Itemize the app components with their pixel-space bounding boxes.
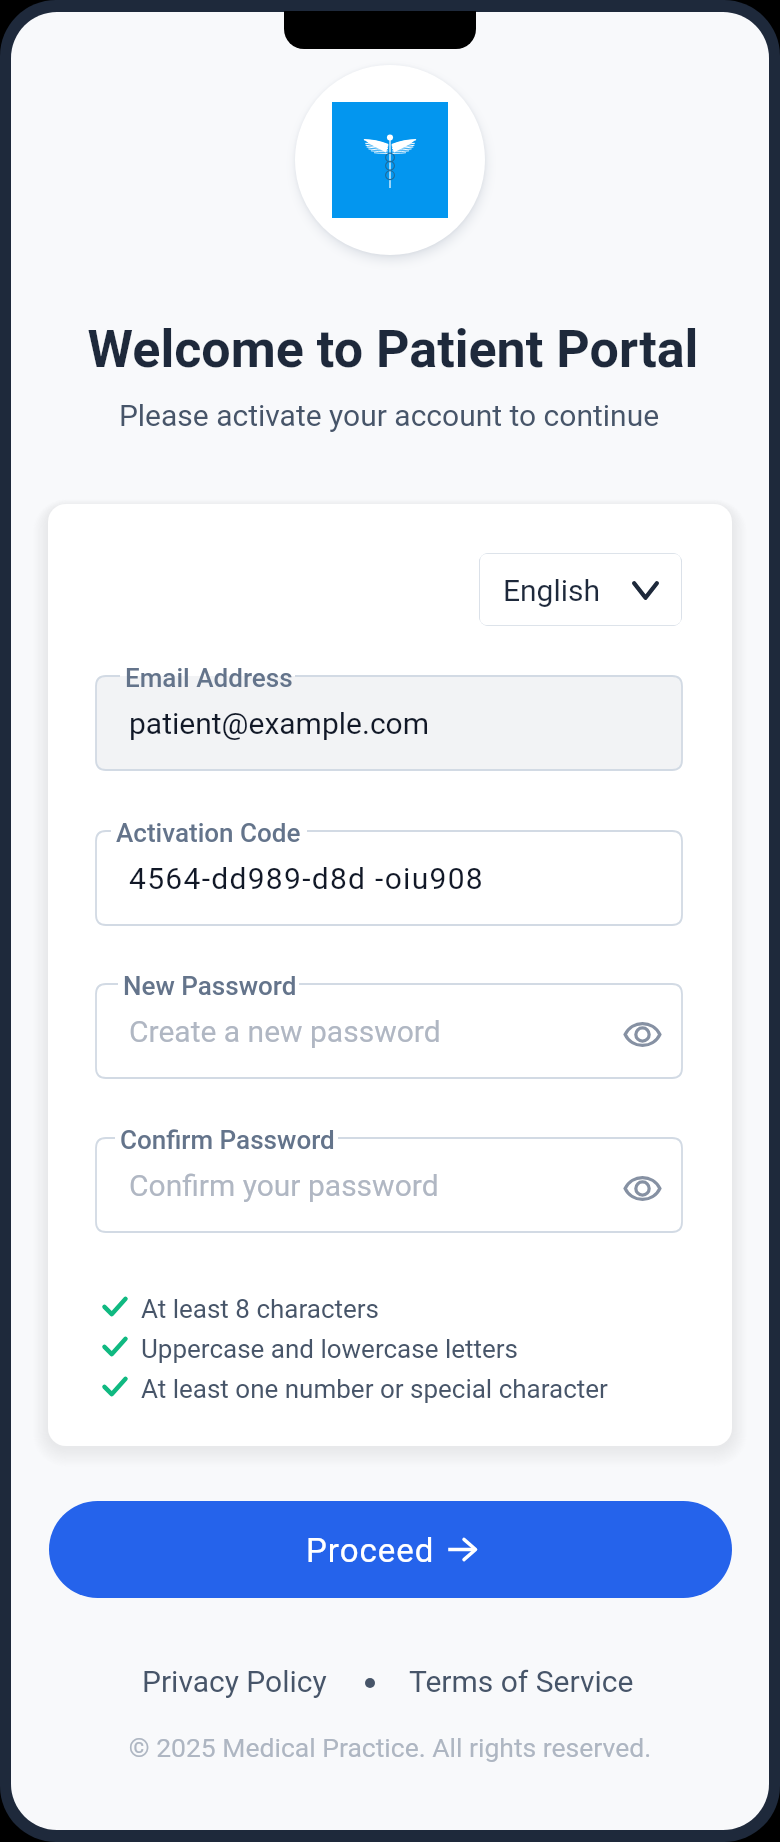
staticText: Email Address (125, 663, 293, 693)
staticText: At least one number or special character (141, 1374, 608, 1404)
button[interactable]: Proceed (49, 1501, 732, 1598)
staticText: patient@example.com (129, 706, 429, 741)
staticText: 4564-dd989-d8d -oiu908 (129, 861, 484, 896)
staticText: Terms of Service (409, 1664, 634, 1699)
button[interactable]: English (479, 553, 682, 626)
staticText: Please activate your account to continue (11, 398, 768, 433)
button[interactable]: Terms of Service (409, 1664, 634, 1699)
staticText: New Password (123, 971, 297, 1001)
staticText: Confirm Password (120, 1125, 335, 1155)
button[interactable]: Privacy Policy (142, 1664, 327, 1699)
staticText: Confirm your password (129, 1168, 439, 1203)
button[interactable]: Create a new password (96, 984, 682, 1078)
staticText: Proceed (306, 1531, 435, 1570)
staticText: Activation Code (116, 818, 301, 848)
button[interactable]: 4564-dd989-d8d -oiu908 (96, 831, 682, 925)
button[interactable]: patient@example.com (96, 676, 682, 770)
staticText: At least 8 characters (141, 1294, 380, 1324)
staticText: © 2025 Medical Practice. All rights rese… (11, 1732, 769, 1763)
staticText: Welcome to Patient Portal (14, 319, 769, 380)
button[interactable]: Show password (609, 1155, 675, 1221)
staticText: Uppercase and lowercase letters (141, 1334, 519, 1364)
button[interactable]: Confirm your password (96, 1138, 682, 1232)
button[interactable]: Show password (609, 1001, 675, 1067)
staticText: Privacy Policy (142, 1664, 327, 1699)
staticText: English (503, 573, 601, 608)
staticText: Create a new password (129, 1014, 441, 1049)
